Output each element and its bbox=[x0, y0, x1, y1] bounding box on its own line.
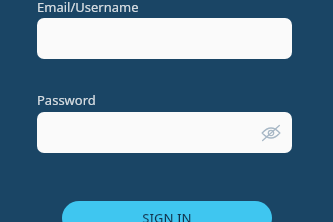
button[interactable] bbox=[37, 18, 292, 59]
button[interactable]: Show password bbox=[258, 120, 284, 146]
staticText: Email/Username bbox=[37, 0, 139, 16]
staticText: Password bbox=[37, 91, 96, 109]
button[interactable]: Show password bbox=[37, 112, 292, 153]
button[interactable]: SIGN IN bbox=[62, 201, 272, 222]
staticText: SIGN IN bbox=[142, 209, 192, 222]
